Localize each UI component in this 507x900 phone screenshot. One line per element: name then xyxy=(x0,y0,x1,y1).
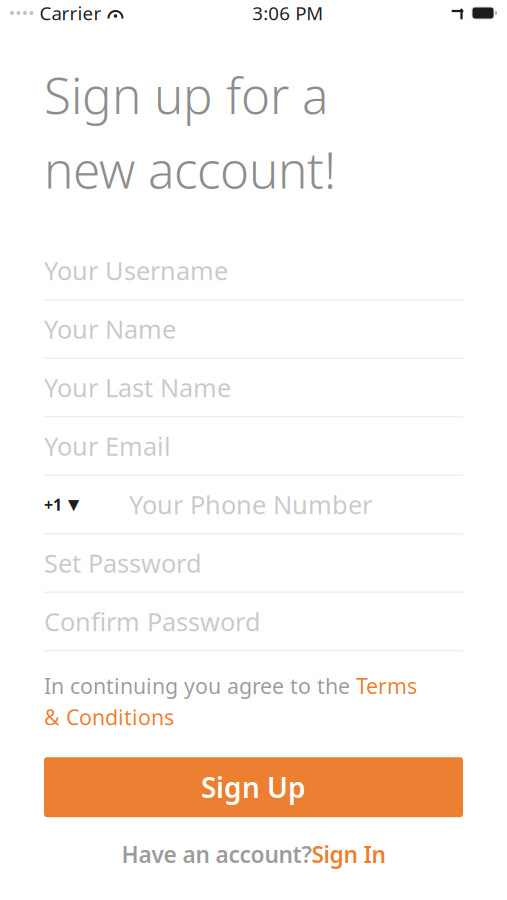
staticText: Your Last Name xyxy=(44,371,231,404)
staticText: ▼ xyxy=(68,496,79,513)
staticText: new account! xyxy=(44,136,336,202)
staticText: Sign In xyxy=(311,839,385,869)
staticText: & Conditions xyxy=(44,703,174,731)
button[interactable]: Select country code xyxy=(62,496,85,513)
staticText: +1 xyxy=(44,494,62,515)
staticText: Set Password xyxy=(44,546,202,580)
staticText: Confirm Password xyxy=(44,605,261,638)
staticText: Your Email xyxy=(44,429,171,463)
button[interactable]: Sign Up xyxy=(44,757,463,817)
staticText: Have an account? xyxy=(121,839,311,869)
staticText: Your Name xyxy=(44,312,176,346)
staticText: Terms xyxy=(356,671,417,700)
button[interactable]: Have an account? xyxy=(0,830,507,878)
staticText: In continuing you agree to the xyxy=(44,671,356,700)
button[interactable]: In continuing you agree to the xyxy=(0,651,507,731)
staticText: Sign up for a xyxy=(44,62,328,127)
staticText: Your Phone Number xyxy=(129,488,372,521)
staticText: Sign Up xyxy=(201,769,306,806)
staticText: Your Username xyxy=(44,254,228,287)
staticText: 3:06 PM xyxy=(252,1,323,25)
staticText: Carrier xyxy=(39,1,101,25)
